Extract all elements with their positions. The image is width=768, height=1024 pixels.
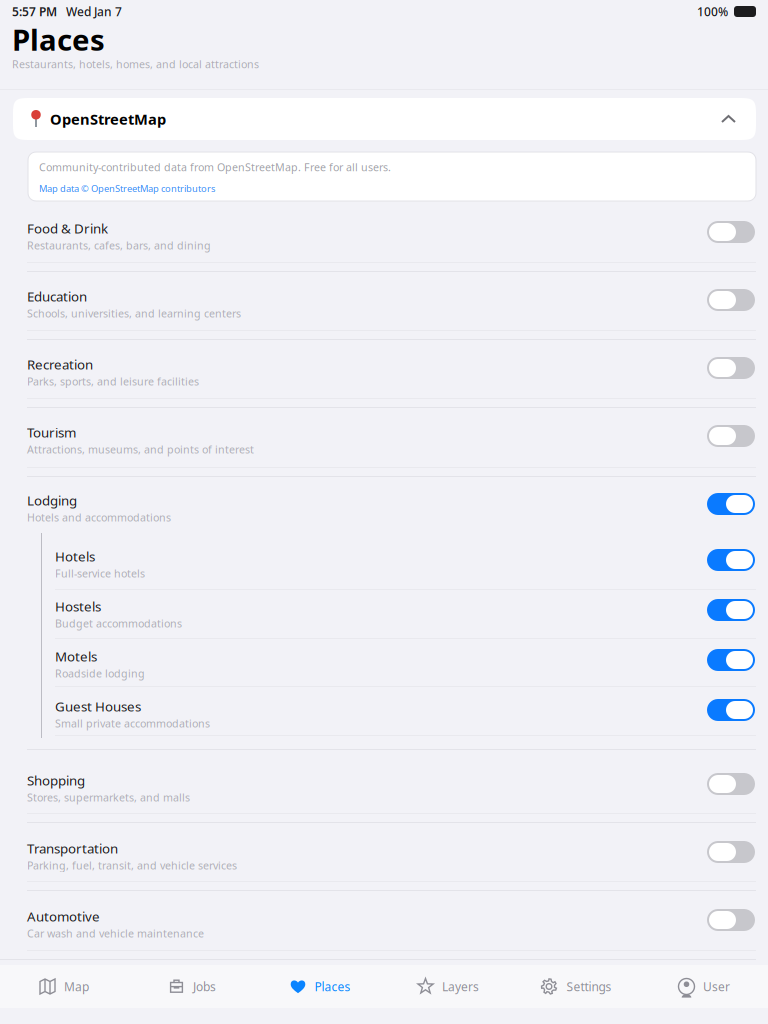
staticText: Hotels and accommodations <box>27 510 171 524</box>
staticText: Recreation <box>27 356 93 373</box>
staticText: Places <box>12 20 105 59</box>
staticText: Motels <box>55 648 97 665</box>
button[interactable]: Lodging <box>0 488 768 520</box>
button[interactable]: Places <box>256 978 384 995</box>
staticText: Settings <box>566 978 611 994</box>
button[interactable]: Hostels <box>0 594 768 626</box>
staticText: Schools, universities, and learning cent… <box>27 306 241 320</box>
staticText: Map <box>64 978 89 994</box>
staticText: Food & Drink <box>27 220 108 237</box>
staticText: User <box>703 978 730 994</box>
staticText: Car wash and vehicle maintenance <box>27 926 204 940</box>
button[interactable]: Shopping <box>0 768 768 800</box>
staticText: Layers <box>442 978 479 994</box>
button[interactable]: Tourism <box>0 420 768 452</box>
button[interactable]: Education <box>0 284 768 316</box>
staticText: Map data © OpenStreetMap contributors <box>39 182 215 195</box>
staticText: Hostels <box>55 598 101 615</box>
staticText: Attractions, museums, and points of inte… <box>27 442 254 456</box>
staticText: Places <box>314 978 350 994</box>
staticText: Hotels <box>55 548 95 565</box>
staticText: Shopping <box>27 772 85 789</box>
button[interactable]: Hotels <box>0 544 768 576</box>
staticText: Roadside lodging <box>55 666 145 680</box>
button[interactable]: Recreation <box>0 352 768 384</box>
staticText: Transportation <box>27 840 118 857</box>
button[interactable]: Food & Drink <box>0 216 768 248</box>
staticText: Tourism <box>27 424 76 441</box>
button[interactable]: User <box>640 978 768 995</box>
button[interactable]: Map <box>0 978 128 995</box>
staticText: Budget accommodations <box>55 616 182 630</box>
staticText: Jobs <box>193 978 216 994</box>
button[interactable]: Motels <box>0 644 768 676</box>
staticText: Lodging <box>27 492 77 509</box>
staticText: OpenStreetMap <box>50 109 166 129</box>
staticText: 5:57 PM <box>12 3 57 19</box>
button[interactable]: Layers <box>384 977 512 995</box>
staticText: Wed Jan 7 <box>57 3 122 19</box>
button[interactable]: Guest Houses <box>0 694 768 726</box>
staticText: Small private accommodations <box>55 716 210 730</box>
button[interactable]: Automotive <box>0 904 768 936</box>
staticText: Restaurants, cafes, bars, and dining <box>27 238 211 252</box>
staticText: Automotive <box>27 908 100 925</box>
staticText: Parking, fuel, transit, and vehicle serv… <box>27 858 237 872</box>
button[interactable]: Transportation <box>0 836 768 868</box>
staticText: Full-service hotels <box>55 566 145 580</box>
staticText: 100% <box>697 3 728 19</box>
staticText: Restaurants, hotels, homes, and local at… <box>12 57 259 71</box>
button[interactable]: Settings <box>512 977 640 995</box>
staticText: Guest Houses <box>55 698 141 715</box>
staticText: Education <box>27 288 87 305</box>
staticText: Community-contributed data from OpenStre… <box>39 160 391 174</box>
staticText: Parks, sports, and leisure facilities <box>27 374 199 388</box>
button[interactable]: Jobs <box>128 978 256 995</box>
staticText: Stores, supermarkets, and malls <box>27 790 190 804</box>
